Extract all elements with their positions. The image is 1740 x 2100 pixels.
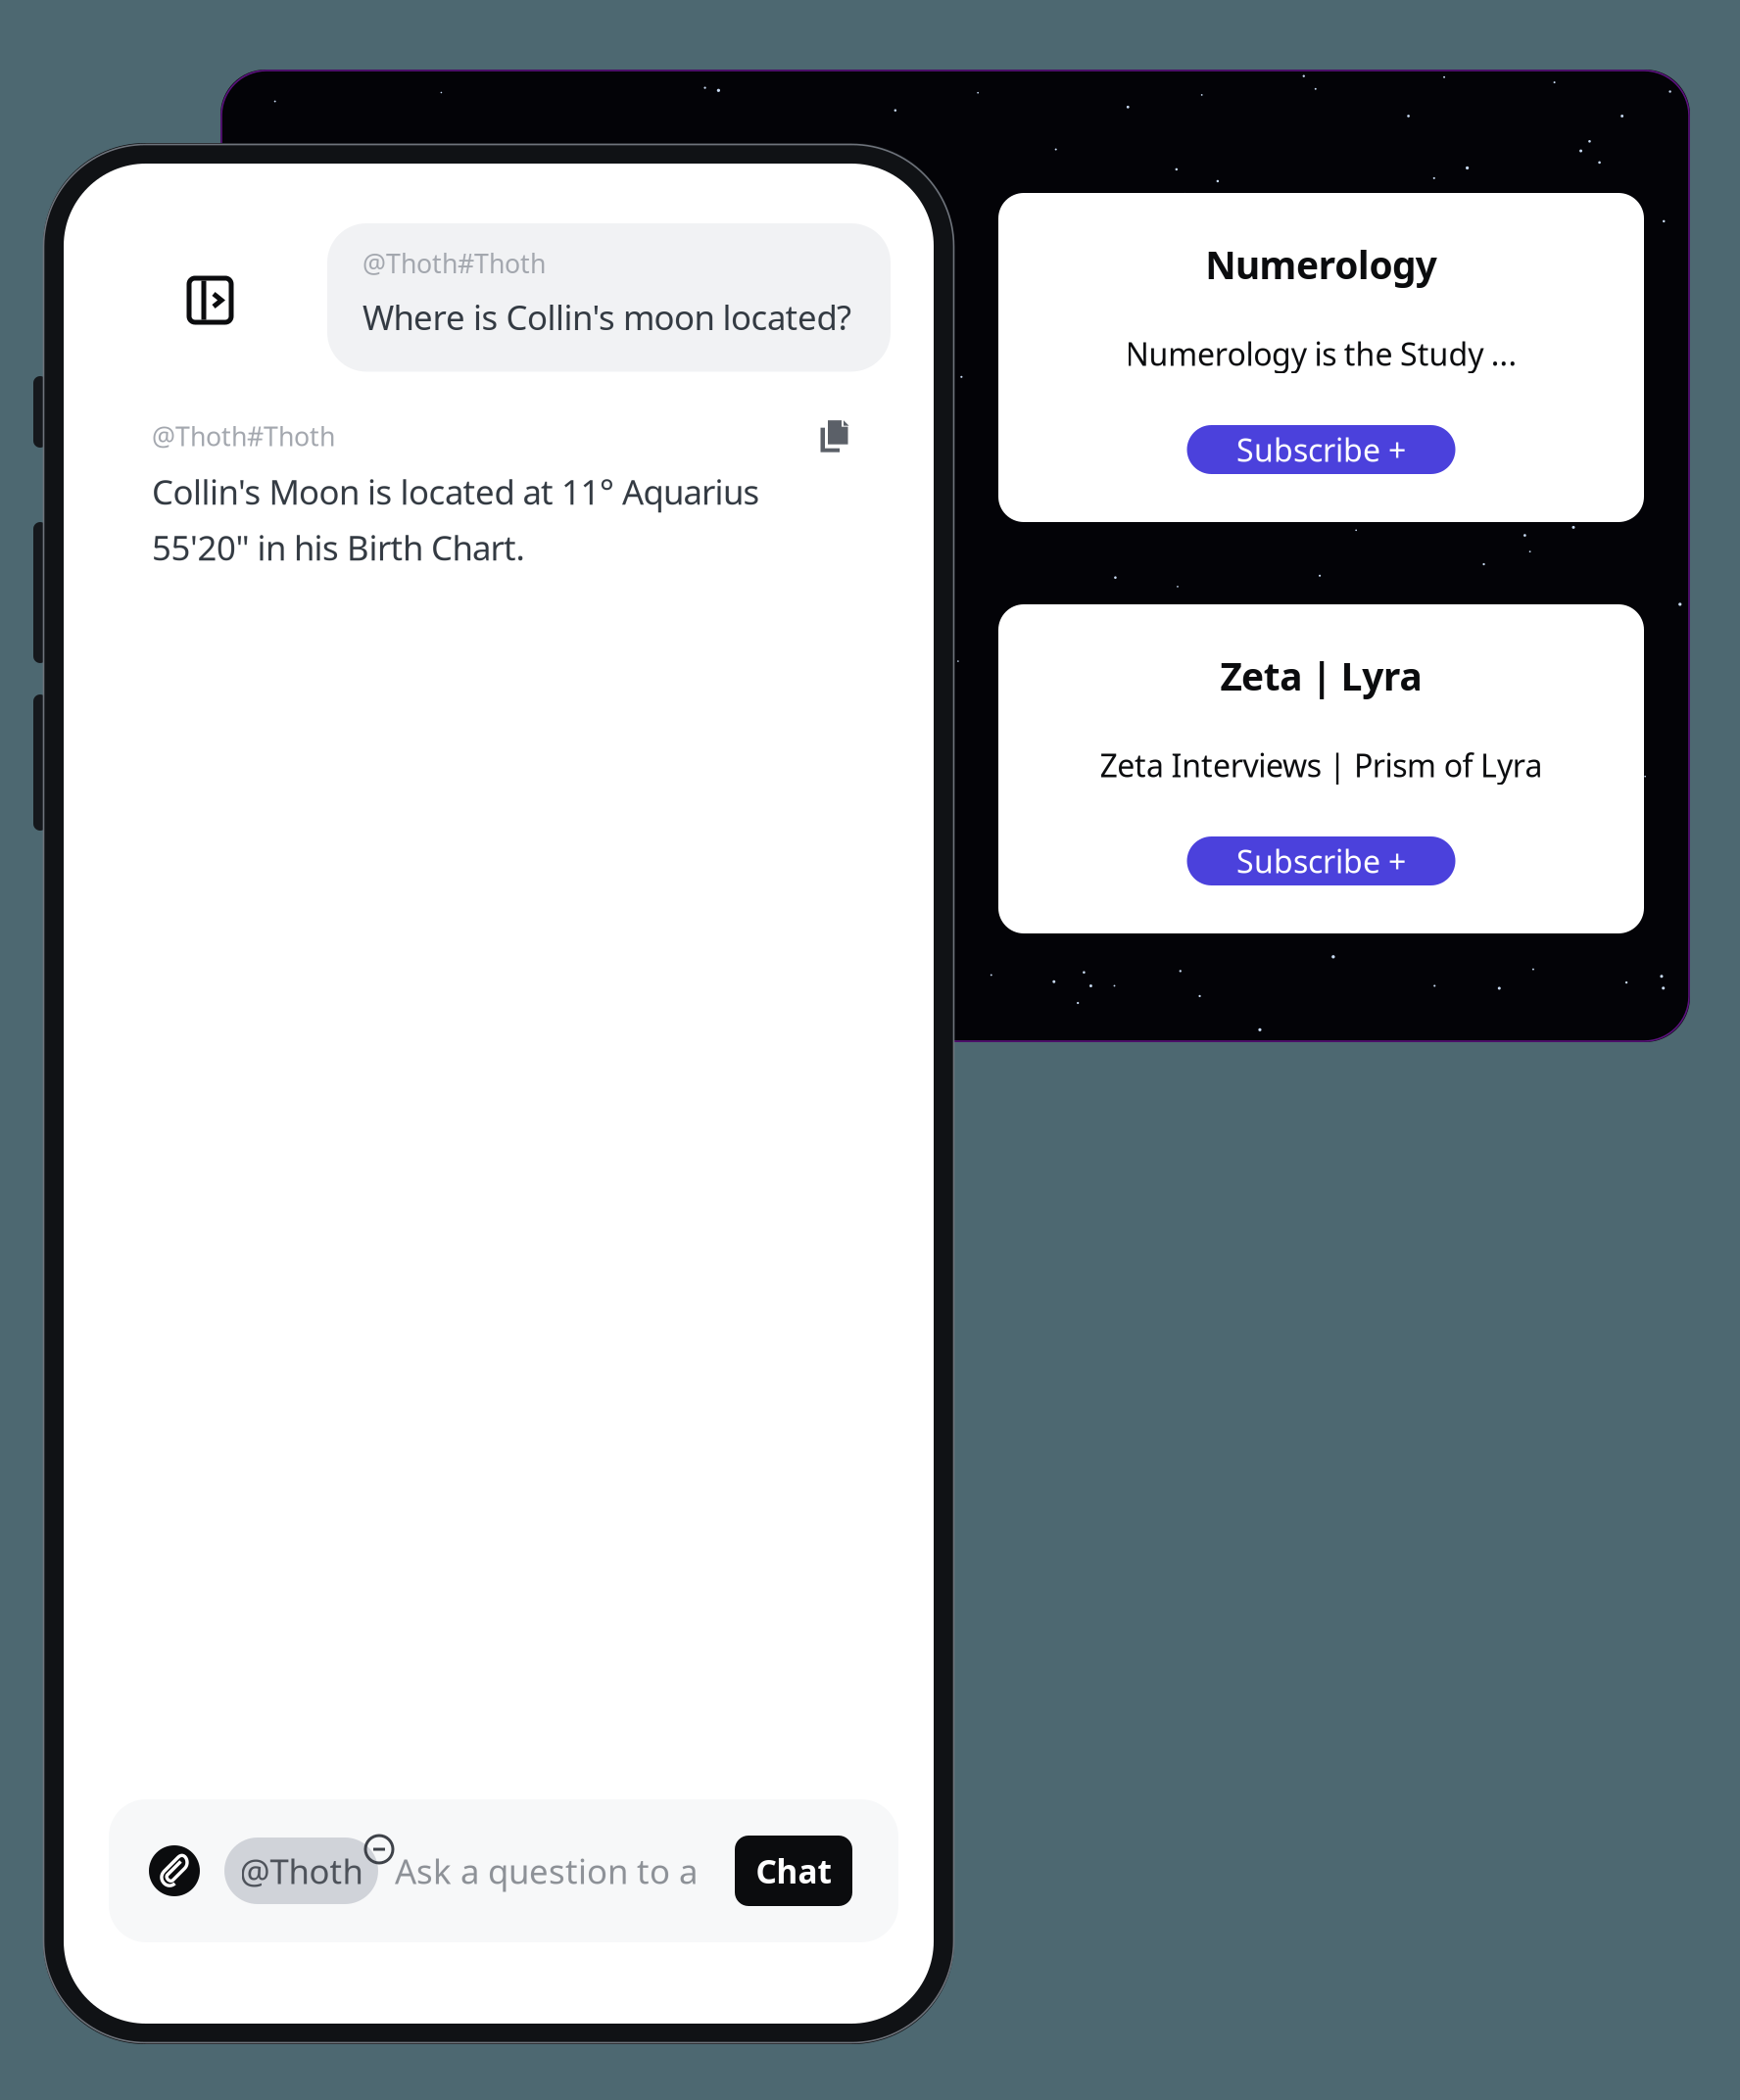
staticText: Zeta Interviews | Prism of Lyra — [1100, 744, 1543, 786]
staticText: @Thoth#Thoth — [362, 246, 546, 281]
staticText: Chat — [756, 1849, 831, 1893]
staticText: Subscribe + — [1236, 429, 1406, 470]
staticText: @Thoth — [240, 1848, 363, 1893]
button[interactable]: Copy message — [819, 419, 849, 453]
button[interactable]: Chat — [735, 1836, 852, 1906]
staticText: Ask a question to a — [395, 1848, 706, 1893]
staticText: Zeta | Lyra — [1220, 651, 1422, 701]
staticText: Collin's Moon is located at 11° Aquarius… — [152, 469, 760, 570]
button[interactable]: Subscribe + — [1187, 425, 1455, 474]
button[interactable]: Subscribe + — [1187, 836, 1455, 885]
button[interactable]: Toggle sidebar — [64, 223, 251, 342]
staticText: @Thoth#Thoth — [152, 419, 335, 453]
button[interactable]: Attach file — [149, 1845, 200, 1896]
staticText: Subscribe + — [1236, 840, 1406, 882]
staticText: Numerology — [1205, 239, 1437, 290]
staticText: Where is Collin's moon located? — [362, 294, 851, 339]
staticText: Numerology is the Study ... — [1125, 333, 1517, 374]
